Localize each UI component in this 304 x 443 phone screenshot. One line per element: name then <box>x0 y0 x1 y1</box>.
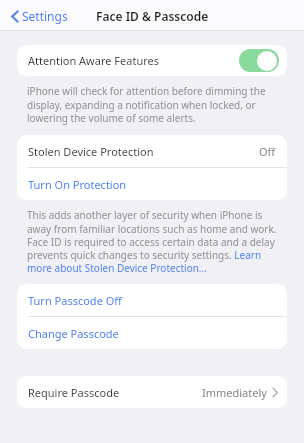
staticText: Face ID & Passcode <box>96 8 209 24</box>
staticText: iPhone will check for attention before d… <box>27 84 280 125</box>
button[interactable]: Change Passcode <box>17 317 287 349</box>
button[interactable]: Stolen Device Protection <box>17 135 287 167</box>
staticText: Change Passcode <box>28 326 119 341</box>
staticText: Require Passcode <box>28 385 202 400</box>
button[interactable]: Turn Passcode Off <box>17 284 287 316</box>
staticText: Immediately <box>202 385 267 400</box>
button[interactable]: Attention Aware Features, on <box>239 49 279 72</box>
button[interactable]: Attention Aware Features <box>17 45 287 76</box>
button[interactable]: Turn On Protection <box>17 168 287 200</box>
staticText: Attention Aware Features <box>28 53 239 68</box>
button[interactable]: This adds another layer of security when… <box>27 208 282 275</box>
staticText: Turn On Protection <box>28 177 127 192</box>
staticText: Off <box>259 144 276 159</box>
button[interactable]: Require Passcode <box>17 376 287 408</box>
staticText: Settings <box>22 8 68 24</box>
button[interactable]: Settings <box>8 4 71 28</box>
staticText: Stolen Device Protection <box>28 144 259 159</box>
other: Open <box>272 387 278 398</box>
staticText: Turn Passcode Off <box>28 293 122 308</box>
